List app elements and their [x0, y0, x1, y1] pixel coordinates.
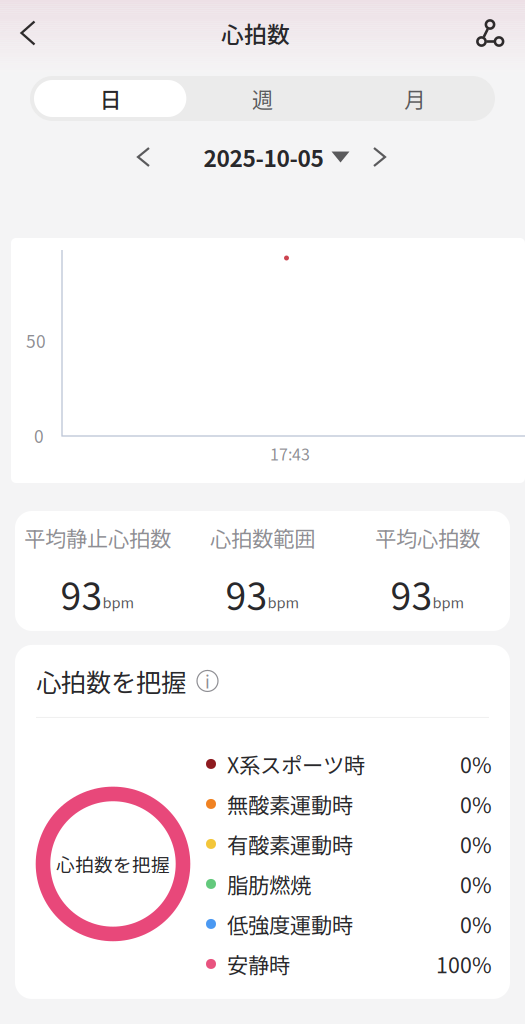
button[interactable]: 週	[186, 76, 339, 121]
staticText: bpm	[432, 591, 464, 612]
staticText: 心拍数を把握	[36, 663, 186, 699]
staticText: 心拍数を把握	[56, 850, 170, 877]
staticText: bpm	[267, 591, 299, 612]
staticText: 50	[26, 328, 46, 353]
button[interactable]: 共有	[455, 0, 525, 66]
staticText: 有酸素運動時	[227, 828, 353, 859]
staticText: 0%	[460, 748, 492, 779]
staticText: 2025-10-05	[203, 141, 323, 173]
button[interactable]: 詳細情報	[197, 670, 218, 691]
button[interactable]: 前の日	[110, 138, 165, 176]
staticText: 0%	[460, 828, 492, 859]
staticText: 脂肪燃焼	[227, 868, 311, 899]
staticText: 月	[404, 83, 425, 114]
staticText: 心拍数	[221, 17, 290, 49]
staticText: 低強度運動時	[227, 908, 353, 939]
staticText: 93	[60, 567, 102, 621]
staticText: 週	[252, 83, 273, 114]
staticText: 0%	[460, 788, 492, 819]
staticText: 日	[100, 83, 121, 114]
button[interactable]: 次の日	[357, 138, 414, 176]
staticText: X系スポーツ時	[227, 748, 365, 779]
button[interactable]: 月	[339, 76, 491, 121]
staticText: 17:43	[270, 442, 310, 465]
staticText: i	[205, 668, 210, 693]
staticText: 平均心拍数	[375, 522, 480, 553]
staticText: 心拍数範囲	[210, 522, 315, 553]
staticText: 100%	[436, 948, 492, 979]
button[interactable]: 戻る	[0, 0, 56, 66]
staticText: 0	[34, 423, 44, 448]
staticText: bpm	[102, 591, 134, 612]
staticText: 0%	[460, 868, 492, 899]
staticText: 平均静止心拍数	[24, 522, 171, 553]
staticText: 0%	[460, 908, 492, 939]
staticText: 93	[390, 567, 432, 621]
staticText: 93	[225, 567, 267, 621]
button[interactable]: 日	[34, 76, 186, 121]
staticText: 安静時	[227, 948, 290, 979]
button[interactable]: 期間を選択	[323, 138, 357, 176]
staticText: 無酸素運動時	[227, 788, 353, 819]
